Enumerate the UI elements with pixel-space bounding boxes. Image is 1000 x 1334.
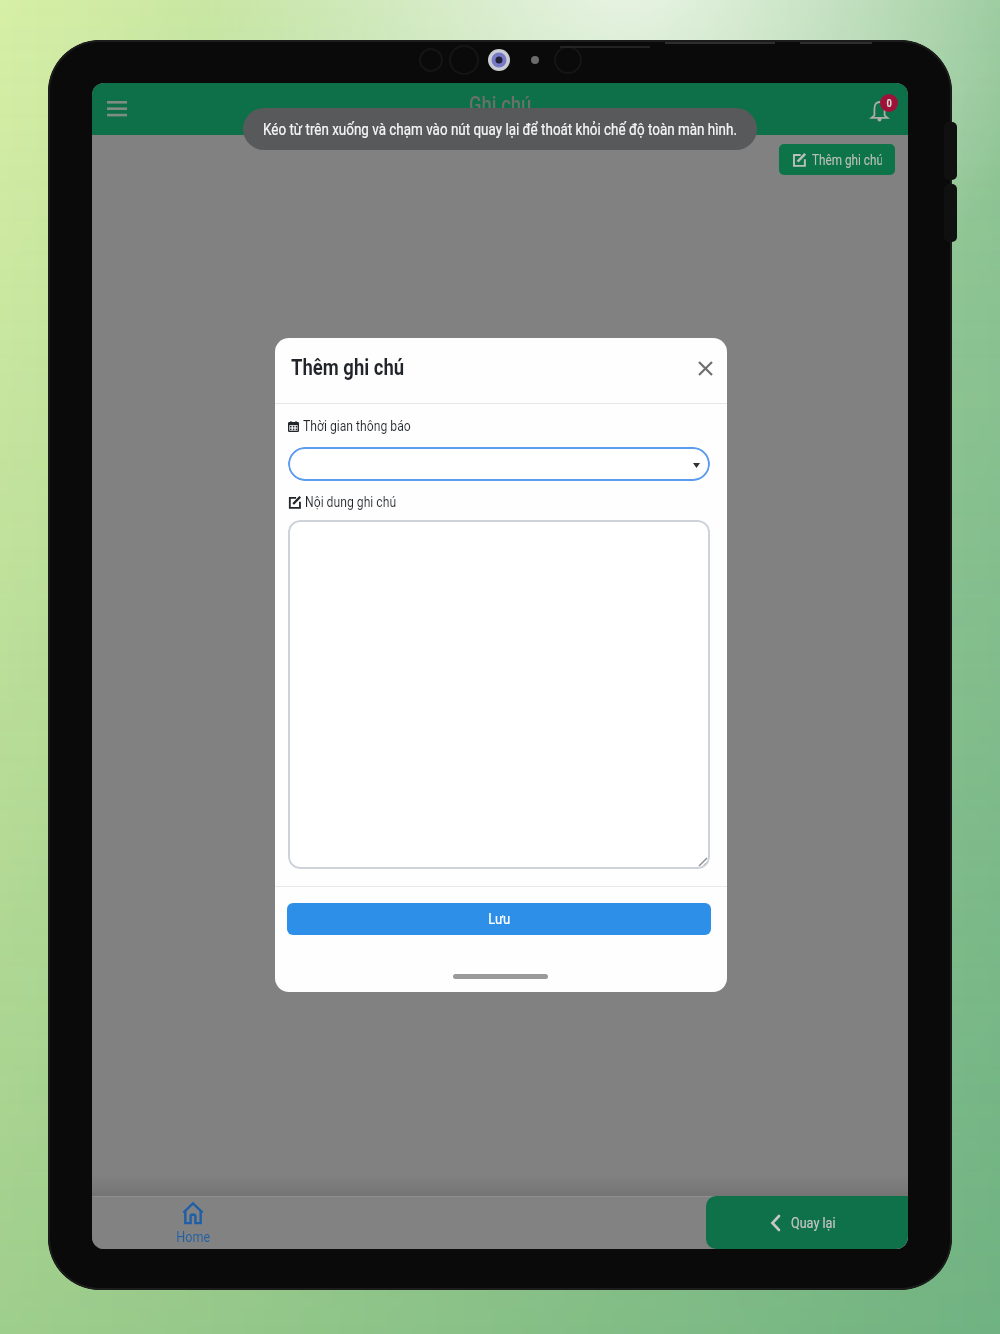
staticText: Thêm ghi chú — [291, 355, 404, 381]
staticText: Ghi chú — [469, 92, 532, 118]
button[interactable]: Home — [163, 1201, 223, 1249]
button[interactable]: Thêm ghi chú — [779, 144, 895, 175]
button[interactable] — [687, 350, 723, 386]
button[interactable]: Quay lại — [706, 1196, 908, 1249]
button[interactable] — [100, 93, 134, 125]
button[interactable]: 0 — [854, 89, 900, 131]
staticText: Nội dung ghi chú — [305, 494, 397, 511]
staticText: Quay lại — [791, 1214, 835, 1232]
staticText: Kéo từ trên xuống và chạm vào nút quay l… — [243, 120, 757, 139]
staticText: Lưu — [488, 910, 511, 928]
staticText: Home — [176, 1228, 211, 1246]
staticText: Thêm ghi chú — [812, 152, 882, 168]
staticText: Thời gian thông báo — [303, 418, 411, 435]
button[interactable] — [288, 447, 710, 481]
button[interactable] — [288, 520, 710, 869]
staticText: 0 — [887, 97, 892, 110]
button[interactable]: Lưu — [287, 903, 711, 935]
